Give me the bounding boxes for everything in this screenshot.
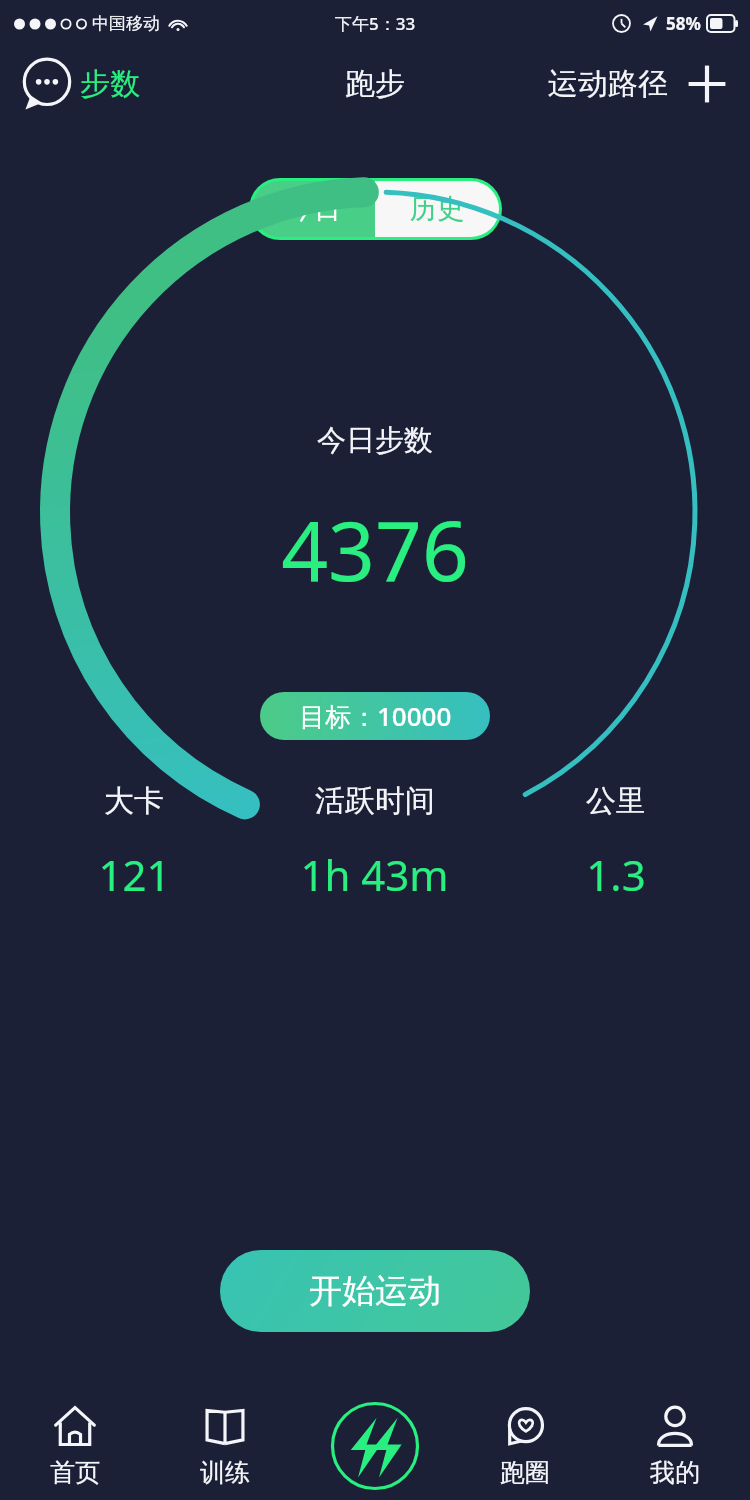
staticText: 大卡 xyxy=(104,782,164,820)
staticText: 今日步数 xyxy=(317,422,433,459)
staticText: 开始运动 xyxy=(309,1270,441,1312)
staticText: 中国移动 xyxy=(92,13,160,34)
button[interactable]: 公里 xyxy=(495,782,736,903)
button[interactable]: Start workout xyxy=(300,1392,450,1500)
staticText: 1h 43m xyxy=(300,846,449,903)
staticText: 训练 xyxy=(200,1457,250,1488)
staticText: 下午5：33 xyxy=(335,12,416,35)
staticText: 今日 xyxy=(287,192,341,226)
staticText: 目标：10000 xyxy=(299,698,452,734)
staticText: 首页 xyxy=(50,1457,100,1488)
staticText: 跑圈 xyxy=(500,1457,550,1488)
button[interactable]: 历史 xyxy=(375,181,499,237)
staticText: 121 xyxy=(98,846,171,903)
staticText: 历史 xyxy=(410,192,464,226)
button[interactable]: 步数 xyxy=(20,57,140,111)
staticText: 4376 xyxy=(281,493,469,605)
staticText: 公里 xyxy=(586,782,646,820)
staticText: 步数 xyxy=(80,65,140,103)
button[interactable]: 运动路径 xyxy=(548,65,668,103)
staticText: 58% xyxy=(666,12,701,35)
button[interactable]: 今日 xyxy=(252,181,375,237)
button[interactable]: 大卡 xyxy=(14,782,254,903)
button[interactable]: 开始运动 xyxy=(220,1250,530,1332)
staticText: 1.3 xyxy=(586,846,646,903)
button[interactable]: Add xyxy=(684,61,730,107)
button[interactable]: 首页 xyxy=(0,1392,150,1500)
button[interactable]: 目标：10000 xyxy=(260,692,490,740)
staticText: 活跃时间 xyxy=(315,782,435,820)
staticText: 我的 xyxy=(650,1457,700,1488)
button[interactable]: 训练 xyxy=(150,1392,300,1500)
button[interactable]: 我的 xyxy=(600,1392,750,1500)
button[interactable]: 跑步 xyxy=(345,65,405,103)
button[interactable]: 跑圈 xyxy=(450,1392,600,1500)
button[interactable]: 活跃时间 xyxy=(254,782,495,903)
